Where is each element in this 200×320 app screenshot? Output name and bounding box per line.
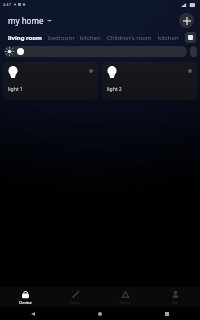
button[interactable]: Children's room: [104, 33, 155, 43]
button[interactable]: Back: [0, 307, 66, 320]
staticText: light 2: [107, 86, 122, 93]
staticText: Device: [19, 300, 32, 305]
button[interactable]: light 1: [3, 62, 98, 100]
staticText: 4:47: [3, 2, 11, 7]
staticText: Me: [172, 300, 178, 305]
button[interactable]: Home: [66, 307, 133, 320]
button[interactable]: my home: [6, 13, 54, 28]
button[interactable]: living room: [5, 33, 45, 43]
button[interactable]: Brightness: [4, 46, 187, 57]
button[interactable]: light 2: [102, 62, 197, 100]
button[interactable]: Device: [0, 287, 50, 307]
staticText: kitchen: [158, 34, 179, 42]
staticText: bedroom: [48, 34, 74, 42]
button[interactable]: bedroom: [45, 33, 77, 43]
button[interactable]: Scene: [50, 287, 100, 307]
staticText: kitchen: [80, 34, 101, 42]
button[interactable]: Add device: [179, 13, 194, 28]
staticText: living room: [8, 34, 42, 42]
staticText: Children's room: [107, 34, 152, 42]
button[interactable]: Recents: [133, 307, 200, 320]
button[interactable]: Smart: [100, 287, 150, 307]
staticText: my home: [8, 15, 44, 26]
button[interactable]: Room view: [185, 32, 196, 43]
staticText: Smart: [119, 300, 131, 305]
button[interactable]: kitchen: [77, 33, 104, 43]
staticText: Scene: [69, 300, 81, 305]
button[interactable]: More: [190, 46, 197, 57]
button[interactable]: kitchen: [155, 33, 182, 43]
button[interactable]: Me: [150, 287, 200, 307]
staticText: light 1: [8, 86, 23, 93]
